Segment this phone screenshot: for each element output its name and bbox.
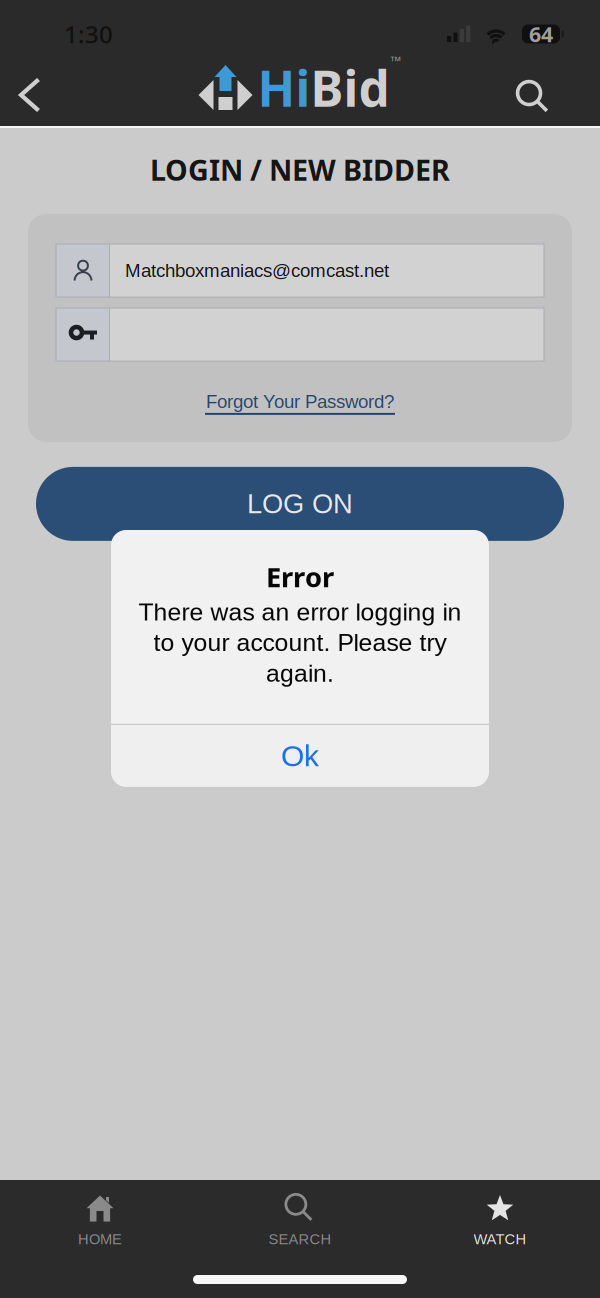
staticText: HOME — [78, 1231, 122, 1247]
staticText: SEARCH — [268, 1231, 331, 1247]
button[interactable]: HOME — [0, 1180, 200, 1275]
staticText: again. — [266, 659, 334, 687]
staticText: LOGIN / NEW BIDDER — [150, 150, 450, 189]
button[interactable]: Search — [501, 70, 567, 126]
staticText: WATCH — [473, 1231, 526, 1247]
staticText: There was an error logging in — [138, 598, 461, 626]
staticText: Matchboxmaniacs@comcast.net — [125, 260, 389, 281]
button[interactable]: WATCH — [400, 1180, 600, 1275]
button[interactable]: SEARCH — [200, 1180, 400, 1275]
staticText: Bid — [310, 54, 389, 121]
staticText: 1:30 — [64, 18, 113, 50]
button[interactable]: Ok — [111, 725, 489, 787]
button[interactable]: Forgot Your Password? — [205, 372, 395, 418]
staticText: Error — [266, 558, 334, 595]
staticText: 64 — [529, 19, 553, 49]
staticText: Ok — [281, 739, 319, 773]
staticText: Forgot Your Password? — [206, 391, 394, 412]
staticText: to your account. Please try — [153, 629, 446, 656]
button[interactable]: LOG ON — [36, 467, 564, 541]
staticText: LOG ON — [247, 489, 353, 519]
button[interactable]: Back — [4, 70, 56, 126]
staticText: ™ — [389, 54, 401, 67]
staticText: Hi — [257, 54, 310, 121]
